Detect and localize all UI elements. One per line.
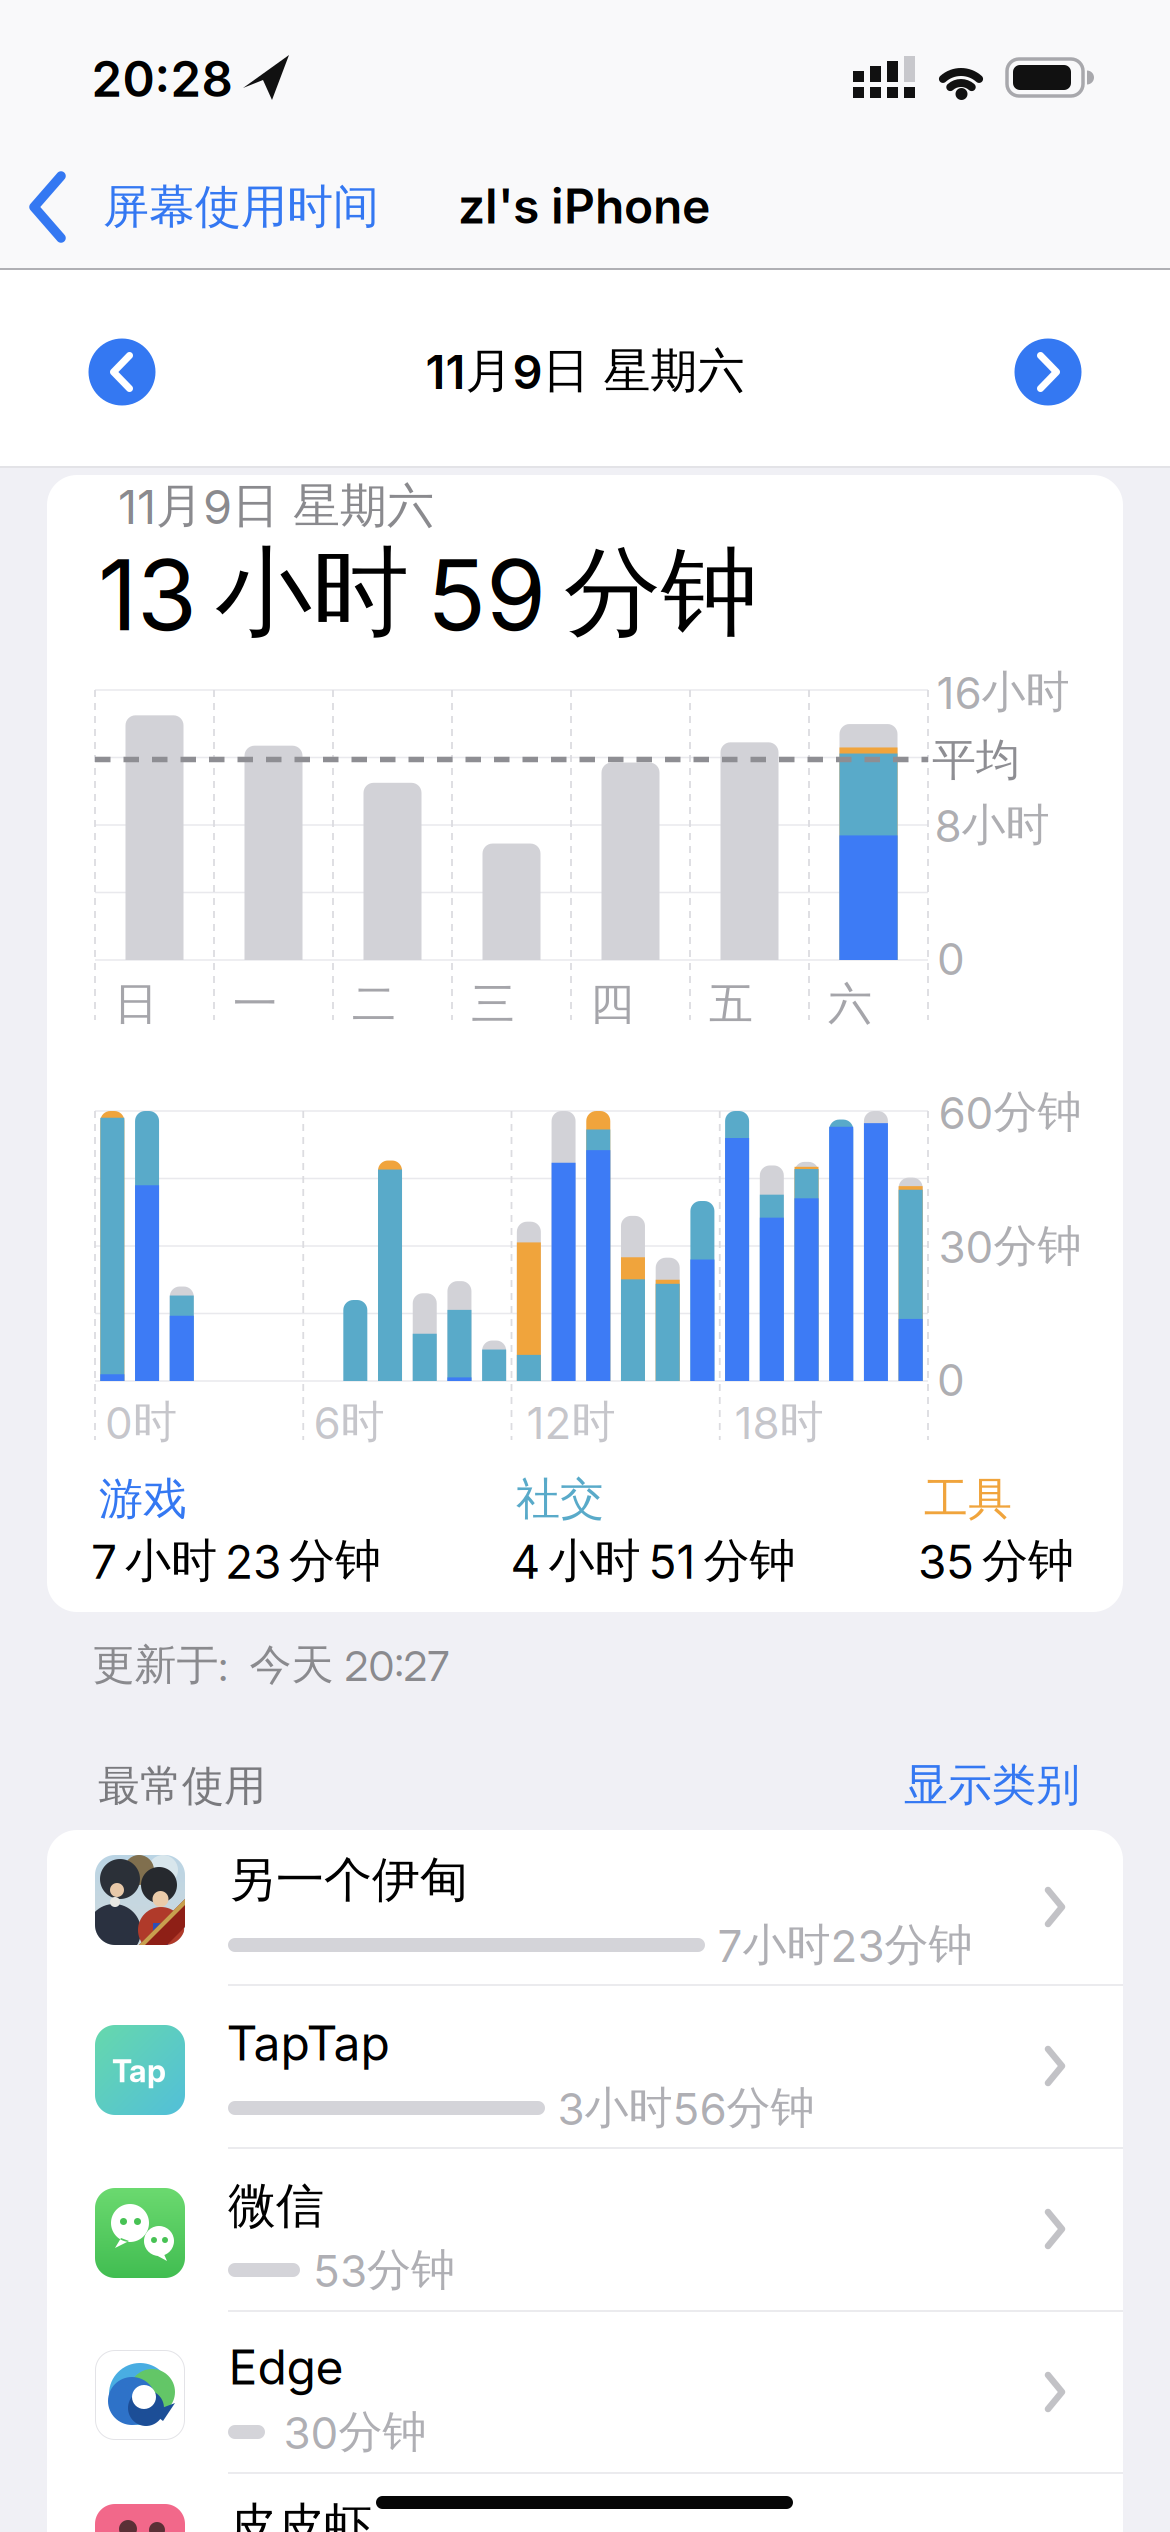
staticText: 0时 bbox=[105, 1395, 177, 1449]
staticText: 11月9日 星期六 bbox=[425, 342, 744, 400]
staticText: 工具 bbox=[924, 1472, 1012, 1526]
button[interactable] bbox=[1014, 338, 1081, 405]
staticText: 3小时56分钟 bbox=[557, 2081, 814, 2135]
staticText: Tap bbox=[112, 2053, 166, 2089]
staticText: 六 bbox=[828, 977, 872, 1031]
staticText: TapTap bbox=[226, 2015, 389, 2071]
staticText: 0 bbox=[937, 933, 965, 985]
staticText: 20:28 bbox=[91, 50, 232, 108]
button[interactable]: 另一个伊甸 bbox=[47, 1830, 1123, 1985]
staticText: 四 bbox=[590, 977, 634, 1031]
staticText: 二 bbox=[352, 977, 396, 1031]
staticText: 游戏 bbox=[99, 1472, 187, 1526]
staticText: 11月9日 星期六 bbox=[118, 477, 434, 535]
staticText: 一 bbox=[233, 977, 277, 1031]
staticText: 三 bbox=[471, 977, 515, 1031]
button[interactable]: 屏幕使用时间 bbox=[25, 162, 405, 252]
staticText: 4 小时 51 分钟 bbox=[510, 1533, 795, 1589]
button[interactable]: 显示类别 bbox=[904, 1758, 1080, 1812]
button[interactable] bbox=[88, 338, 155, 405]
button[interactable]: Edge bbox=[47, 2311, 1123, 2473]
staticText: 显示类别 bbox=[904, 1758, 1080, 1812]
staticText: 18时 bbox=[734, 1395, 823, 1449]
staticText: 更新于: 今天 20:27 bbox=[92, 1639, 449, 1691]
staticText: 53分钟 bbox=[313, 2243, 455, 2297]
staticText: 屏幕使用时间 bbox=[103, 179, 379, 235]
staticText: 13 小时 59 分钟 bbox=[98, 533, 758, 652]
staticText: 微信 bbox=[228, 2176, 324, 2235]
staticText: zl's iPhone bbox=[458, 178, 710, 234]
staticText: 另一个伊甸 bbox=[228, 1850, 468, 1909]
staticText: 60分钟 bbox=[938, 1085, 1081, 1139]
staticText: 日 bbox=[114, 977, 158, 1031]
staticText: 7小时23分钟 bbox=[717, 1918, 972, 1972]
staticText: 16小时 bbox=[936, 665, 1069, 719]
staticText: 五 bbox=[709, 977, 753, 1031]
staticText: 皮皮虾 bbox=[228, 2496, 372, 2532]
staticText: 12时 bbox=[526, 1395, 615, 1449]
staticText: 30分钟 bbox=[283, 2405, 426, 2459]
staticText: 30分钟 bbox=[938, 1219, 1081, 1273]
staticText: 7 小时 23 分钟 bbox=[91, 1533, 381, 1589]
staticText: 6时 bbox=[313, 1395, 384, 1449]
button[interactable]: 微信 bbox=[47, 2148, 1123, 2311]
staticText: 社交 bbox=[516, 1472, 604, 1526]
staticText: 平均 bbox=[932, 733, 1020, 787]
staticText: 8小时 bbox=[934, 798, 1049, 852]
staticText: 最常使用 bbox=[98, 1760, 266, 1812]
staticText: 35 分钟 bbox=[918, 1533, 1074, 1589]
staticText: 0 bbox=[937, 1354, 965, 1406]
button[interactable]: Tap bbox=[47, 1985, 1123, 2148]
staticText: Edge bbox=[228, 2339, 343, 2395]
